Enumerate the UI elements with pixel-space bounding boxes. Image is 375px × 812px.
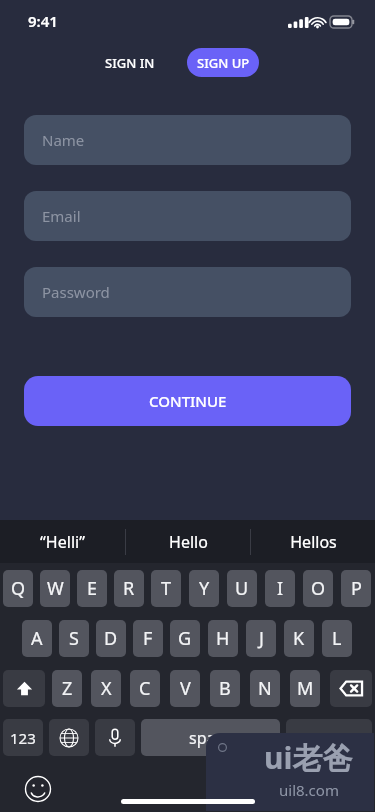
- staticText: “Helli”: [40, 531, 85, 553]
- button[interactable]: H: [208, 620, 238, 657]
- staticText: Hello: [169, 531, 208, 553]
- button[interactable]: J: [246, 620, 276, 657]
- button[interactable]: G: [170, 620, 200, 657]
- staticText: P: [351, 576, 362, 601]
- staticText: Email: [42, 206, 81, 226]
- staticText: Q: [11, 576, 26, 601]
- button[interactable]: Q: [3, 570, 33, 607]
- staticText: uil8.com: [279, 780, 339, 800]
- staticText: 123: [10, 728, 36, 748]
- button[interactable]: T: [151, 570, 181, 607]
- staticText: K: [293, 626, 305, 651]
- staticText: Hellos: [290, 531, 337, 553]
- staticText: Z: [62, 676, 73, 701]
- button[interactable]: SIGN UP: [187, 48, 259, 77]
- button[interactable]: E: [77, 570, 107, 607]
- staticText: A: [31, 626, 43, 651]
- button[interactable]: N: [250, 670, 280, 707]
- staticText: return: [305, 727, 353, 749]
- button[interactable]: SIGN IN: [91, 48, 169, 78]
- button[interactable]: V: [170, 670, 200, 707]
- button[interactable]: D: [96, 620, 126, 657]
- button[interactable]: CONTINUE: [24, 376, 351, 426]
- button[interactable]: Hello: [126, 520, 250, 563]
- staticText: V: [180, 676, 191, 701]
- button[interactable]: U: [227, 570, 257, 607]
- button[interactable]: Z: [52, 670, 82, 707]
- button[interactable]: 123: [3, 719, 43, 756]
- staticText: D: [104, 626, 118, 651]
- staticText: X: [101, 676, 112, 701]
- staticText: space: [189, 727, 233, 749]
- staticText: M: [297, 676, 314, 701]
- staticText: E: [87, 576, 98, 601]
- button[interactable]: F: [133, 620, 163, 657]
- button[interactable]: “Helli”: [0, 520, 125, 563]
- button[interactable]: Switch keyboard: [49, 719, 89, 756]
- staticText: B: [219, 676, 231, 701]
- staticText: U: [235, 576, 249, 601]
- staticText: G: [178, 626, 192, 651]
- staticText: SIGN IN: [105, 54, 155, 72]
- staticText: T: [161, 576, 172, 601]
- button[interactable]: C: [130, 670, 160, 707]
- staticText: H: [216, 626, 230, 651]
- staticText: I: [277, 576, 284, 601]
- staticText: N: [258, 676, 272, 701]
- button[interactable]: W: [40, 570, 70, 607]
- staticText: Name: [42, 130, 85, 150]
- button[interactable]: Y: [189, 570, 219, 607]
- button[interactable]: L: [322, 620, 352, 657]
- button[interactable]: I: [265, 570, 295, 607]
- staticText: W: [47, 576, 64, 601]
- staticText: ui老爸: [264, 737, 353, 778]
- staticText: CONTINUE: [149, 391, 227, 411]
- staticText: J: [259, 626, 264, 651]
- button[interactable]: Hellos: [251, 520, 375, 563]
- button[interactable]: R: [114, 570, 144, 607]
- staticText: R: [123, 576, 135, 601]
- button[interactable]: Delete: [330, 670, 372, 707]
- button[interactable]: P: [341, 570, 371, 607]
- staticText: SIGN UP: [197, 54, 250, 72]
- button[interactable]: Emoji: [24, 775, 52, 803]
- staticText: C: [139, 676, 151, 701]
- button[interactable]: O: [303, 570, 333, 607]
- button[interactable]: Email: [24, 191, 351, 241]
- staticText: 9:41: [28, 11, 58, 31]
- button[interactable]: B: [210, 670, 240, 707]
- staticText: L: [332, 626, 342, 651]
- button[interactable]: A: [22, 620, 52, 657]
- button[interactable]: X: [91, 670, 121, 707]
- button[interactable]: Name: [24, 115, 351, 165]
- staticText: F: [143, 626, 153, 651]
- button[interactable]: return: [286, 719, 372, 756]
- staticText: Password: [42, 282, 110, 302]
- staticText: O: [311, 576, 326, 601]
- staticText: S: [69, 626, 79, 651]
- staticText: Y: [199, 576, 210, 601]
- button[interactable]: space: [141, 719, 280, 756]
- button[interactable]: Shift: [3, 670, 45, 707]
- button[interactable]: Password: [24, 267, 351, 317]
- button[interactable]: Voice input: [95, 719, 135, 756]
- button[interactable]: S: [59, 620, 89, 657]
- button[interactable]: M: [290, 670, 320, 707]
- button[interactable]: K: [284, 620, 314, 657]
